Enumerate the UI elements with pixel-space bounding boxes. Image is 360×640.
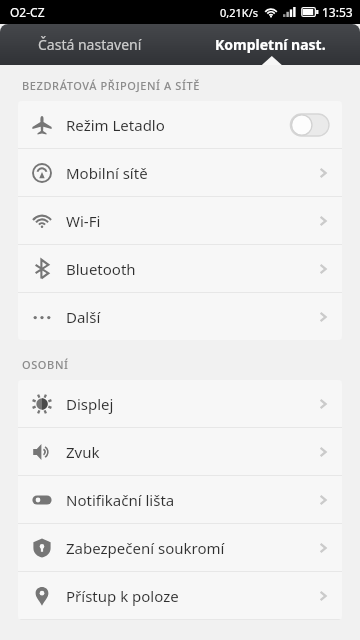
button[interactable]: Kompletní nast.	[180, 24, 360, 65]
button[interactable]: Airplane mode toggle	[283, 114, 329, 136]
button[interactable]: Wi-Fi	[18, 197, 342, 244]
staticText: Častá nastavení	[38, 35, 142, 54]
staticText: Režim Letadlo	[66, 115, 283, 135]
staticText: Wi-Fi	[66, 211, 317, 231]
button[interactable]: Notifikační lišta	[18, 476, 342, 523]
staticText: Bluetooth	[66, 259, 317, 279]
staticText: Displej	[66, 394, 317, 414]
button[interactable]: Mobilní sítě	[18, 149, 342, 196]
staticText: Zvuk	[66, 442, 317, 462]
staticText: Notifikační lišta	[66, 490, 317, 510]
staticText: Zabezpečení soukromí	[66, 538, 317, 558]
button[interactable]: Bluetooth	[18, 245, 342, 292]
button[interactable]: Další	[18, 293, 342, 340]
staticText: O2-CZ	[10, 4, 45, 20]
staticText: Mobilní sítě	[66, 163, 317, 183]
button[interactable]: Přístup k poloze	[18, 572, 342, 619]
button[interactable]: Zvuk	[18, 428, 342, 475]
staticText: 13:53	[322, 4, 353, 20]
button[interactable]: Častá nastavení	[0, 24, 180, 65]
staticText: BEZDRÁTOVÁ PŘIPOJENÍ A SÍTĚ	[22, 78, 200, 93]
button[interactable]: Zabezpečení soukromí	[18, 524, 342, 571]
staticText: Další	[66, 307, 317, 327]
button[interactable]: Režim Letadlo	[18, 101, 342, 148]
button[interactable]: Displej	[18, 380, 342, 427]
staticText: 0,21K/s	[220, 5, 258, 20]
staticText: OSOBNÍ	[22, 357, 69, 372]
staticText: Přístup k poloze	[66, 586, 317, 606]
staticText: Kompletní nast.	[215, 35, 326, 54]
